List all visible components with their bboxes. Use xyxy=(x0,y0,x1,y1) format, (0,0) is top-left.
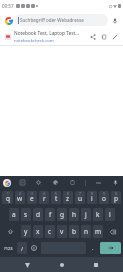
button[interactable]: More xyxy=(94,178,103,187)
button[interactable]: d xyxy=(33,208,43,221)
button[interactable]: Home xyxy=(55,258,69,272)
staticText: l xyxy=(109,210,111,219)
staticText: n xyxy=(84,227,89,236)
staticText: i xyxy=(91,194,93,203)
button[interactable]: Google xyxy=(3,15,14,26)
staticText: p xyxy=(114,194,118,203)
button[interactable]: k xyxy=(93,208,103,221)
button[interactable]: Settings xyxy=(34,178,43,187)
button[interactable]: n xyxy=(81,225,91,238)
staticText: 09:57 xyxy=(2,3,14,9)
button[interactable]: Stickers xyxy=(51,178,60,187)
button[interactable]: Enter xyxy=(100,242,121,254)
button[interactable]: Shift xyxy=(2,225,19,238)
staticText: notebookcheck.com xyxy=(14,38,54,44)
button[interactable]: l xyxy=(105,208,115,221)
staticText: / xyxy=(21,245,24,252)
staticText: a xyxy=(12,210,16,219)
staticText: d xyxy=(36,210,40,219)
button[interactable]: 3 xyxy=(27,191,37,204)
staticText: r xyxy=(43,194,46,203)
staticText: j xyxy=(85,210,87,219)
button[interactable]: b xyxy=(69,225,79,238)
button[interactable]: 7 xyxy=(75,191,85,204)
button[interactable]: 1 xyxy=(2,191,13,204)
staticText: c xyxy=(48,227,52,236)
button[interactable]: Voice search xyxy=(109,15,120,26)
button[interactable]: c xyxy=(45,225,55,238)
staticText: y xyxy=(24,227,28,236)
button[interactable]: Google Assistant xyxy=(3,179,11,187)
button[interactable]: v xyxy=(57,225,67,238)
staticText: z xyxy=(66,194,70,203)
button[interactable]: Copy xyxy=(98,31,109,42)
button[interactable]: Notebook Test, Laptop Test... xyxy=(0,28,123,45)
button[interactable]: GIF xyxy=(18,178,27,187)
button[interactable]: 4 xyxy=(39,191,49,204)
button[interactable]: . xyxy=(88,242,98,254)
button[interactable]: g xyxy=(57,208,67,221)
staticText: ?123 xyxy=(4,246,13,251)
button[interactable]: j xyxy=(81,208,91,221)
staticText: h xyxy=(72,210,77,219)
button[interactable]: x xyxy=(33,225,43,238)
staticText: 6 xyxy=(67,192,69,196)
staticText: Notebook Test, Laptop Test... xyxy=(14,30,80,37)
staticText: 8 xyxy=(91,192,93,196)
staticText: x xyxy=(36,227,40,236)
staticText: 5 xyxy=(55,192,57,196)
button[interactable]: Edit query xyxy=(109,31,120,42)
staticText: 1 xyxy=(7,192,9,196)
button[interactable]: 9 xyxy=(99,191,109,204)
staticText: 7 xyxy=(79,192,81,196)
staticText: k xyxy=(96,210,100,219)
button[interactable]: 5 xyxy=(51,191,61,204)
staticText: 9 xyxy=(103,192,105,196)
staticText: . xyxy=(92,244,94,251)
button[interactable]: Voice input xyxy=(111,178,120,187)
button[interactable]: s xyxy=(21,208,31,221)
button[interactable]: 8 xyxy=(87,191,97,204)
button[interactable]: 2 xyxy=(15,191,25,204)
staticText: o xyxy=(102,194,106,203)
button[interactable]: Back xyxy=(20,258,34,272)
button[interactable]: Recent apps xyxy=(89,258,103,272)
button[interactable]: 0 xyxy=(111,191,121,204)
staticText: f xyxy=(49,210,52,219)
button[interactable]: a xyxy=(9,208,19,221)
button[interactable]: f xyxy=(45,208,55,221)
staticText: q xyxy=(6,194,10,203)
button[interactable]: Emoji xyxy=(29,242,39,254)
staticText: 0 xyxy=(115,192,117,196)
staticText: e xyxy=(30,194,34,203)
button[interactable]: y xyxy=(21,225,31,238)
staticText: 3 xyxy=(31,192,33,196)
staticText: g xyxy=(60,210,64,219)
staticText: w xyxy=(17,194,23,203)
staticText: u xyxy=(78,194,83,203)
staticText: Suchbegriff oder Webadresse eingeben xyxy=(20,17,105,23)
button[interactable]: Backspace xyxy=(105,225,121,238)
button[interactable]: h xyxy=(69,208,79,221)
staticText: v xyxy=(60,227,64,236)
button[interactable]: Share xyxy=(87,31,98,42)
button[interactable]: 6 xyxy=(63,191,73,204)
staticText: b xyxy=(72,227,76,236)
staticText: m xyxy=(95,227,102,236)
staticText: s xyxy=(24,210,28,219)
button[interactable]: m xyxy=(93,225,103,238)
button[interactable]: Suchbegriff oder Webadresse eingeben xyxy=(15,14,108,26)
button[interactable]: ?123 xyxy=(2,242,15,254)
staticText: t xyxy=(55,194,58,203)
staticText: 4 xyxy=(43,192,45,196)
button[interactable]: Clipboard xyxy=(68,178,77,187)
staticText: 2 xyxy=(19,192,21,196)
button[interactable]: / xyxy=(17,242,27,254)
